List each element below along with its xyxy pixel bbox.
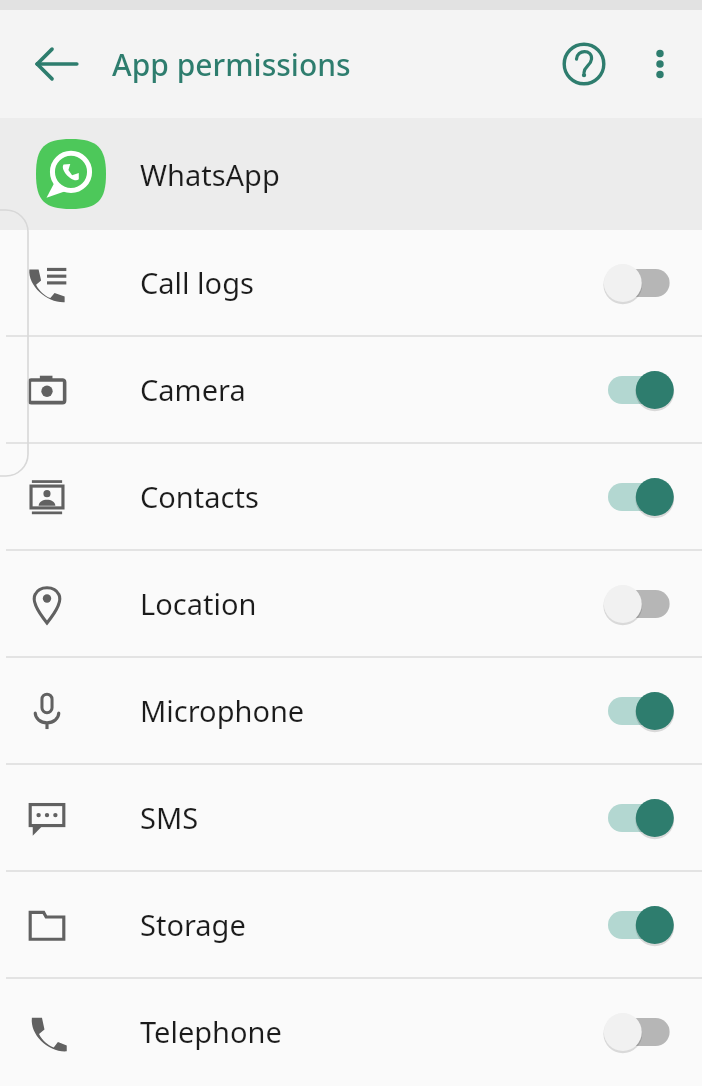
button[interactable]: Location bbox=[0, 551, 702, 656]
button[interactable]: SMS permission toggle bbox=[592, 765, 702, 870]
button[interactable]: More options bbox=[630, 34, 690, 94]
button[interactable]: Storage bbox=[0, 872, 702, 977]
button[interactable]: Camera bbox=[0, 337, 702, 442]
staticText: Microphone bbox=[140, 691, 592, 730]
button[interactable]: Help bbox=[554, 34, 614, 94]
button[interactable]: Back bbox=[26, 33, 88, 95]
button[interactable]: Call logs permission toggle bbox=[592, 230, 702, 335]
staticText: SMS bbox=[140, 798, 592, 837]
button[interactable]: WhatsApp bbox=[0, 118, 702, 230]
button[interactable]: Location permission toggle bbox=[592, 551, 702, 656]
button[interactable]: Storage permission toggle bbox=[592, 872, 702, 977]
staticText: Call logs bbox=[140, 263, 592, 302]
button[interactable]: Contacts permission toggle bbox=[592, 444, 702, 549]
staticText: WhatsApp bbox=[140, 155, 280, 194]
staticText: App permissions bbox=[112, 44, 351, 85]
button[interactable]: Contacts bbox=[0, 444, 702, 549]
button[interactable]: Camera permission toggle bbox=[592, 337, 702, 442]
button[interactable]: Microphone permission toggle bbox=[592, 658, 702, 763]
staticText: Camera bbox=[140, 370, 592, 409]
staticText: Contacts bbox=[140, 477, 592, 516]
button[interactable]: SMS bbox=[0, 765, 702, 870]
button[interactable]: Telephone bbox=[0, 979, 702, 1084]
button[interactable]: Telephone permission toggle bbox=[592, 979, 702, 1084]
button[interactable]: Call logs bbox=[0, 230, 702, 335]
staticText: Telephone bbox=[140, 1012, 592, 1051]
staticText: Location bbox=[140, 584, 592, 623]
button[interactable]: Microphone bbox=[0, 658, 702, 763]
staticText: Storage bbox=[140, 905, 592, 944]
